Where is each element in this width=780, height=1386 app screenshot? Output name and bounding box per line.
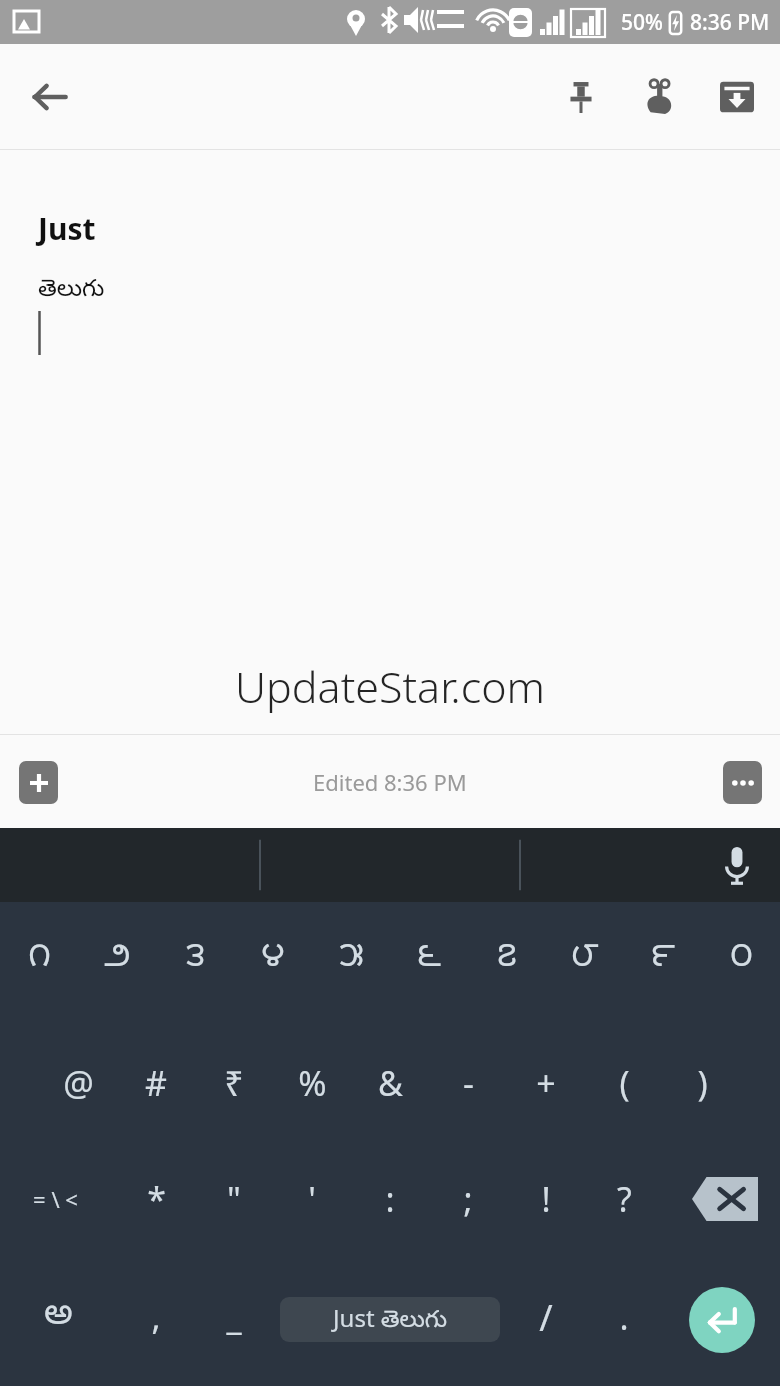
staticText: (	[619, 1060, 630, 1106]
button[interactable]: Voice input	[708, 836, 766, 894]
button[interactable]: "	[195, 1171, 273, 1227]
button[interactable]: అ	[19, 1289, 97, 1345]
staticText: @	[63, 1060, 94, 1106]
staticText: &	[378, 1060, 403, 1106]
button[interactable]: /	[507, 1289, 585, 1345]
button[interactable]: = \ <	[16, 1171, 94, 1227]
button[interactable]: %	[273, 1055, 351, 1111]
staticText: ౪	[261, 936, 285, 982]
button[interactable]: More options	[712, 752, 772, 812]
staticText: +	[536, 1060, 556, 1106]
staticText: ౫	[339, 936, 364, 982]
staticText: *	[147, 1176, 166, 1222]
staticText: UpdateStar.com	[235, 657, 545, 716]
staticText: /	[539, 1293, 553, 1342]
button[interactable]: Archive	[700, 60, 774, 134]
button[interactable]: Reminder	[618, 56, 700, 138]
button[interactable]: .	[585, 1289, 663, 1345]
staticText: %	[298, 1060, 327, 1106]
button[interactable]: Backspace	[692, 1177, 758, 1221]
staticText: '	[308, 1176, 316, 1222]
staticText: -	[463, 1060, 474, 1106]
staticText: ?	[617, 1176, 632, 1222]
button[interactable]: _	[195, 1289, 273, 1345]
staticText: ౮	[571, 936, 599, 982]
staticText: ౩	[186, 936, 205, 982]
button[interactable]: ౪	[234, 931, 312, 987]
staticText: ,	[151, 1294, 161, 1340]
button[interactable]: Pin	[544, 60, 618, 134]
staticText: ౭	[497, 936, 517, 982]
button[interactable]: +	[507, 1055, 585, 1111]
staticText: ౬	[417, 936, 441, 982]
staticText: Just	[38, 208, 96, 249]
button[interactable]: ౭	[468, 931, 546, 987]
button[interactable]: ౫	[312, 931, 390, 987]
staticText: ౯	[651, 936, 675, 982]
staticText: తెలుగు	[38, 275, 105, 307]
button[interactable]: #	[117, 1055, 195, 1111]
staticText: అ	[44, 1293, 73, 1342]
staticText: ₹	[224, 1060, 244, 1106]
button[interactable]: ,	[117, 1289, 195, 1345]
staticText: 50%	[621, 8, 663, 37]
button[interactable]: ౩	[156, 931, 234, 987]
staticText: ;	[463, 1176, 473, 1222]
button[interactable]: (	[585, 1055, 663, 1111]
staticText: "	[227, 1176, 241, 1222]
staticText: #	[145, 1060, 167, 1106]
staticText: = \ <	[33, 1184, 78, 1214]
button[interactable]: !	[507, 1171, 585, 1227]
button[interactable]: :	[351, 1171, 429, 1227]
staticText: ౨	[104, 936, 131, 982]
button[interactable]: Just తెలుగు	[280, 1297, 500, 1342]
button[interactable]: *	[117, 1171, 195, 1227]
button[interactable]: ౮	[546, 931, 624, 987]
staticText: )	[697, 1060, 708, 1106]
button[interactable]: ౬	[390, 931, 468, 987]
button[interactable]: Just	[38, 208, 780, 355]
staticText: _	[226, 1294, 242, 1340]
button[interactable]: ౯	[624, 931, 702, 987]
button[interactable]: @	[39, 1055, 117, 1111]
button[interactable]: Add	[8, 752, 68, 812]
staticText: ౧	[28, 936, 51, 982]
staticText: !	[541, 1176, 551, 1222]
button[interactable]: ౧	[0, 931, 78, 987]
button[interactable]: -	[429, 1055, 507, 1111]
button[interactable]: '	[273, 1171, 351, 1227]
button[interactable]: ;	[429, 1171, 507, 1227]
button[interactable]: &	[351, 1055, 429, 1111]
staticText: ౦	[730, 936, 753, 982]
button[interactable]: ౦	[702, 931, 780, 987]
staticText: Edited 8:36 PM	[313, 767, 467, 797]
staticText: :	[385, 1176, 395, 1222]
staticText: 8:36 PM	[690, 8, 770, 37]
staticText: .	[619, 1294, 629, 1340]
button[interactable]: Enter	[689, 1287, 755, 1353]
button[interactable]: ₹	[195, 1055, 273, 1111]
button[interactable]: ౨	[78, 931, 156, 987]
button[interactable]: ?	[585, 1171, 663, 1227]
button[interactable]: )	[663, 1055, 741, 1111]
staticText: Just తెలుగు	[333, 1301, 448, 1338]
button[interactable]: Back	[12, 59, 88, 135]
